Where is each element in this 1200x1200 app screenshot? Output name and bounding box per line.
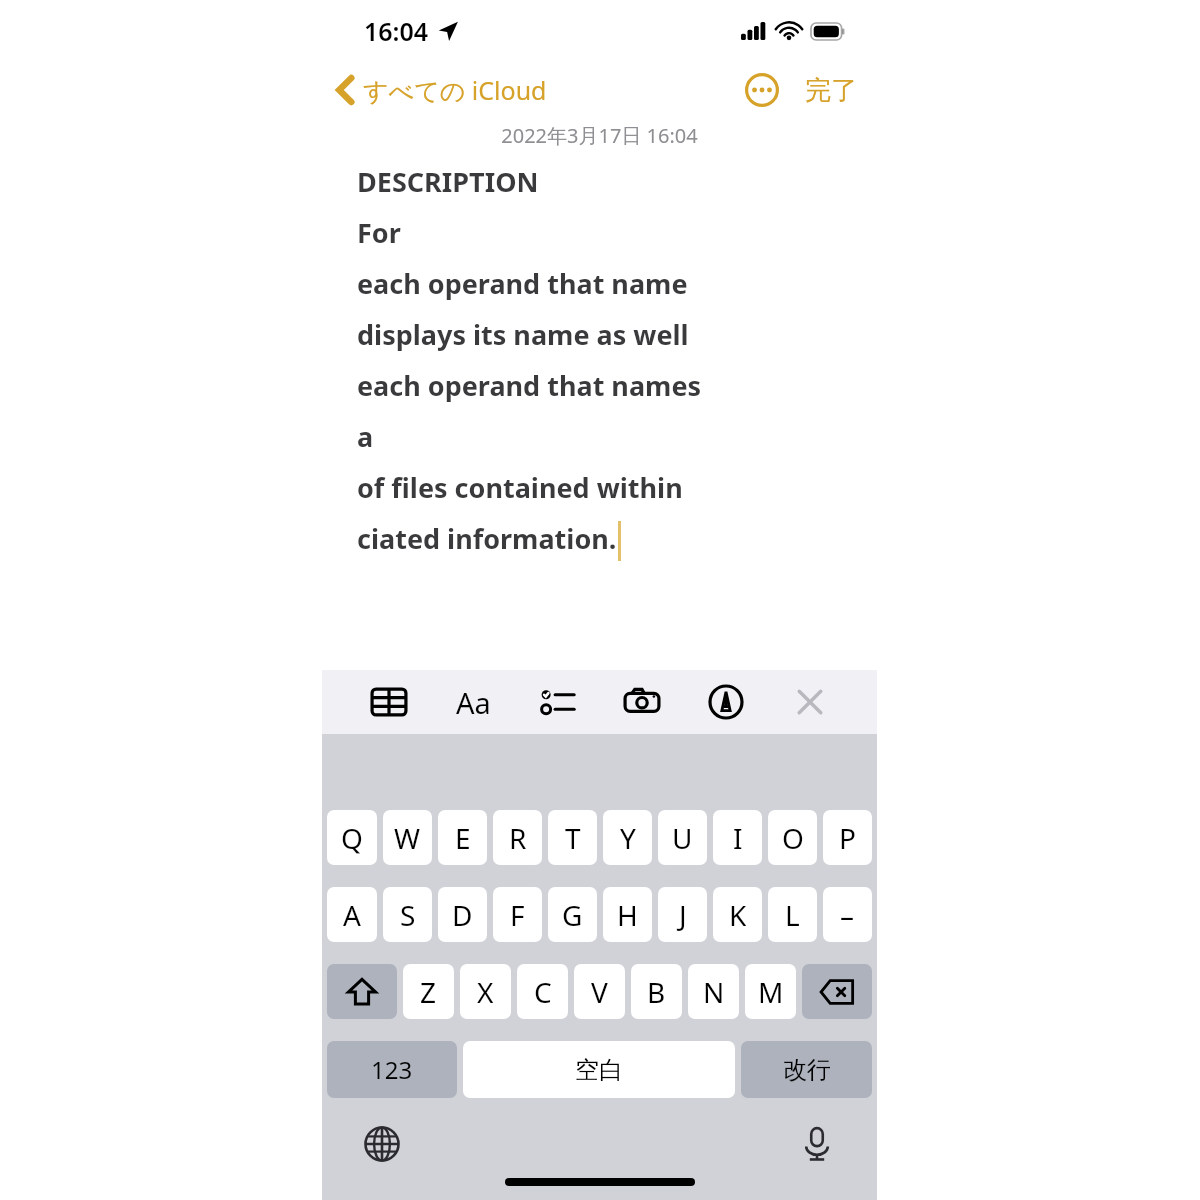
button[interactable]: 123 [327,1041,457,1098]
staticText: each operand that name [357,265,688,302]
staticText: 空白 [575,1055,623,1085]
button[interactable]: Y [603,810,652,865]
staticText: Q [341,819,363,857]
staticText: X [477,973,494,1011]
staticText: U [672,819,693,857]
staticText: W [394,819,421,857]
button[interactable]: K [713,887,762,942]
button[interactable]: N [688,964,739,1019]
staticText: – [840,896,855,934]
button[interactable]: O [768,810,817,865]
button[interactable]: C [517,964,568,1019]
button[interactable]: L [768,887,817,942]
button[interactable]: Z [403,964,454,1019]
button[interactable]: 空白 [463,1041,735,1098]
staticText: Aa [456,683,491,722]
staticText: H [617,896,638,934]
button[interactable]: J [658,887,707,942]
staticText: T [565,819,581,857]
button[interactable]: A [327,887,377,942]
button[interactable]: F [493,887,542,942]
staticText: A [343,896,361,934]
button[interactable]: D [438,887,487,942]
button[interactable]: X [460,964,511,1019]
button[interactable]: I [713,810,762,865]
button[interactable]: 改行 [741,1041,872,1098]
staticText: L [785,896,800,934]
staticText: E [455,819,471,857]
staticText: 16:04 [364,14,429,48]
staticText: DESCRIPTION [357,163,539,200]
button[interactable]: Table [366,679,412,725]
button[interactable]: R [493,810,542,865]
staticText: of files contained within [357,469,683,506]
staticText: each operand that names [357,367,702,404]
staticText: F [510,896,525,934]
button[interactable]: H [603,887,652,942]
button[interactable]: T [548,810,597,865]
button[interactable]: Q [327,810,377,865]
staticText: 改行 [783,1055,831,1085]
staticText: G [562,896,583,934]
staticText: I [733,819,743,857]
button[interactable]: – [823,887,872,942]
button[interactable]: Dictate [795,1122,839,1166]
button[interactable]: P [823,810,872,865]
staticText: R [509,819,527,857]
staticText: displays its name as well [357,316,689,353]
staticText: Y [620,819,636,857]
button[interactable]: M [745,964,796,1019]
staticText: O [782,819,804,857]
button[interactable]: U [658,810,707,865]
button[interactable]: Change keyboard [360,1122,404,1166]
staticText: For [357,214,401,251]
staticText: 完了 [805,74,857,107]
staticText: N [703,973,725,1011]
staticText: S [400,896,416,934]
button[interactable]: B [631,964,682,1019]
staticText: 2022年3月17日 16:04 [501,122,698,149]
staticText: C [534,973,552,1011]
button[interactable]: すべての iCloud [322,69,555,111]
button[interactable]: More options [739,67,785,113]
button[interactable]: Delete [802,964,872,1019]
staticText: M [758,973,784,1011]
button[interactable]: V [574,964,625,1019]
button[interactable]: W [383,810,432,865]
staticText: B [647,973,666,1011]
button[interactable]: Close keyboard [787,679,833,725]
button[interactable]: E [438,810,487,865]
staticText: V [591,973,608,1011]
staticText: すべての iCloud [363,73,547,107]
button[interactable]: Markup [703,679,749,725]
staticText: 123 [371,1053,413,1086]
button[interactable]: Aa [450,677,497,728]
staticText: D [452,896,473,934]
staticText: a [357,418,374,455]
staticText: P [839,819,856,857]
staticText: K [729,896,747,934]
staticText: ciated information. [357,520,617,557]
button[interactable]: 完了 [801,68,861,113]
staticText: Z [420,973,437,1011]
button[interactable]: Camera [619,679,665,725]
button[interactable]: G [548,887,597,942]
button[interactable]: Checklist [535,679,581,725]
button[interactable]: Shift [327,964,397,1019]
button[interactable]: S [383,887,432,942]
staticText: J [679,896,687,934]
